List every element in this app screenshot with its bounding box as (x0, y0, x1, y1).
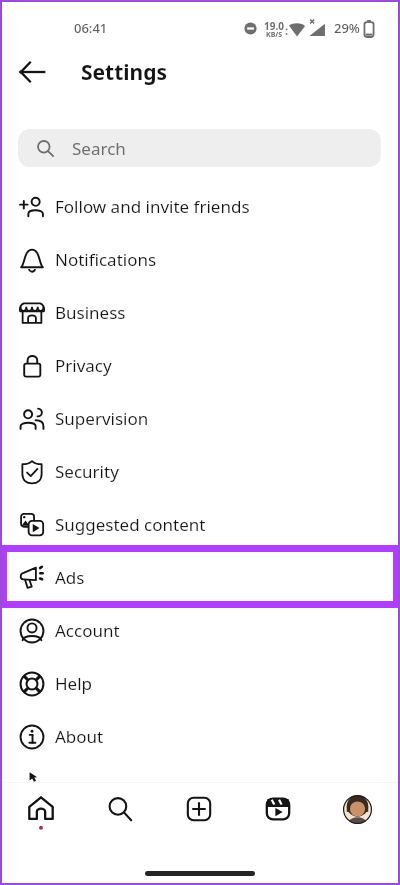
button[interactable]: Follow and invite friends (0, 180, 400, 233)
button[interactable]: Back (8, 48, 56, 96)
button[interactable]: Business (0, 286, 400, 339)
button[interactable]: Search (18, 129, 381, 167)
staticText: Privacy (55, 354, 112, 377)
staticText: Settings (81, 58, 168, 87)
staticText: Search (72, 137, 126, 160)
button[interactable]: Suggested content (0, 498, 400, 551)
button[interactable]: Ads (0, 551, 400, 604)
staticText: KB/S (266, 30, 283, 40)
staticText: 19.0 (264, 19, 284, 33)
staticText: Help (55, 672, 93, 695)
button[interactable]: Reels (252, 783, 304, 835)
button[interactable]: Notifications (0, 233, 400, 286)
button[interactable]: Profile (331, 783, 383, 835)
staticText: Suggested content (55, 513, 206, 536)
staticText: Supervision (55, 407, 149, 430)
staticText: About (55, 725, 104, 748)
button[interactable]: Supervision (0, 392, 400, 445)
staticText: 29% (334, 19, 360, 37)
button[interactable]: About (0, 710, 400, 763)
staticText: Follow and invite friends (55, 195, 250, 218)
button[interactable]: Create (173, 783, 225, 835)
staticText: Security (55, 460, 119, 483)
staticText: 06:41 (74, 19, 108, 37)
button[interactable]: Security (0, 445, 400, 498)
button[interactable]: Account (0, 604, 400, 657)
staticText: Business (55, 301, 126, 324)
button[interactable]: Privacy (0, 339, 400, 392)
staticText: Notifications (55, 248, 157, 271)
button[interactable]: Search (94, 783, 146, 835)
staticText: Account (55, 619, 120, 642)
button[interactable]: Help (0, 657, 400, 710)
staticText: Ads (55, 566, 85, 589)
button[interactable]: Home (15, 783, 67, 835)
